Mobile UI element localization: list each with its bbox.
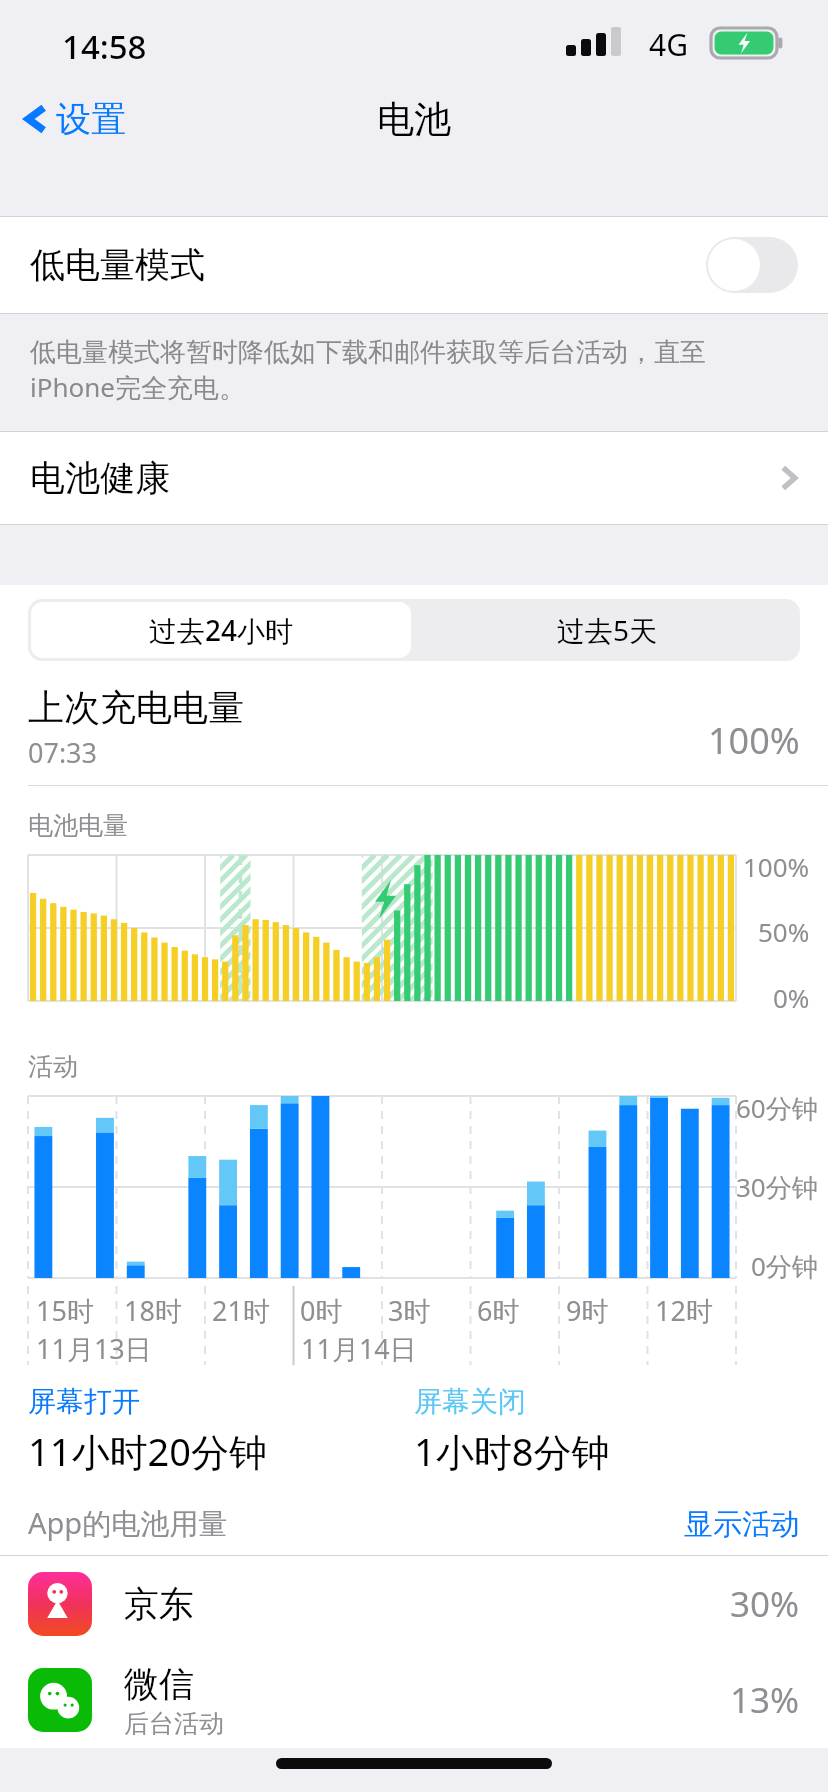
button[interactable]: 过去24小时 bbox=[31, 602, 411, 658]
staticText: 电池健康 bbox=[30, 456, 170, 500]
button[interactable]: 京东 bbox=[0, 1556, 828, 1652]
button[interactable]: Low Power Mode toggle bbox=[706, 237, 798, 293]
button[interactable]: 设置 bbox=[0, 91, 142, 147]
staticText: 4G bbox=[649, 24, 688, 65]
button[interactable]: 低电量模式 bbox=[0, 217, 828, 313]
staticText: 低电量模式 bbox=[30, 243, 205, 287]
staticText: 设置 bbox=[56, 97, 126, 141]
staticText: 上次充电电量 bbox=[28, 685, 244, 730]
staticText: 0分钟 bbox=[751, 1248, 818, 1284]
staticText: 30% bbox=[730, 1580, 800, 1628]
staticText: 后台活动 bbox=[124, 1708, 224, 1739]
staticText: 过去24小时 bbox=[149, 611, 294, 649]
staticText: 低电量模式将暂时降低如下载和邮件获取等后台活动，直至 bbox=[30, 336, 706, 369]
staticText: 21时 bbox=[212, 1292, 270, 1329]
button[interactable]: 微信 bbox=[0, 1652, 828, 1748]
staticText: 1小时8分钟 bbox=[414, 1425, 610, 1477]
staticText: 18时 bbox=[124, 1292, 182, 1329]
staticText: iPhone完全充电。 bbox=[30, 369, 245, 405]
button[interactable]: 显示活动 bbox=[684, 1506, 800, 1543]
button[interactable]: 过去5天 bbox=[414, 599, 800, 661]
staticText: 3时 bbox=[388, 1292, 431, 1329]
staticText: 07:33 bbox=[28, 734, 98, 771]
staticText: 9时 bbox=[566, 1292, 609, 1329]
staticText: 屏幕关闭 bbox=[414, 1384, 526, 1419]
staticText: 电池电量 bbox=[28, 810, 128, 841]
staticText: 11月14日 bbox=[301, 1330, 417, 1367]
staticText: 微信 bbox=[124, 1662, 194, 1706]
staticText: 过去5天 bbox=[557, 611, 658, 649]
staticText: 0% bbox=[773, 980, 810, 1015]
staticText: 屏幕打开 bbox=[28, 1384, 140, 1419]
staticText: 13% bbox=[730, 1676, 800, 1724]
staticText: 6时 bbox=[477, 1292, 520, 1329]
staticText: 30分钟 bbox=[736, 1169, 818, 1205]
staticText: 0时 bbox=[300, 1292, 343, 1329]
staticText: 电池 bbox=[377, 96, 451, 143]
staticText: 活动 bbox=[28, 1051, 78, 1082]
staticText: 15时 bbox=[36, 1292, 94, 1329]
staticText: 显示活动 bbox=[684, 1506, 800, 1543]
staticText: 100% bbox=[743, 849, 810, 884]
staticText: 60分钟 bbox=[736, 1090, 818, 1126]
staticText: 50% bbox=[758, 914, 810, 949]
button[interactable]: 电池健康 bbox=[0, 432, 828, 524]
staticText: App的电池用量 bbox=[28, 1503, 228, 1543]
staticText: 100% bbox=[708, 716, 800, 765]
staticText: 14:58 bbox=[62, 24, 147, 69]
staticText: 京东 bbox=[124, 1582, 194, 1626]
staticText: 12时 bbox=[655, 1292, 713, 1329]
staticText: 11小时20分钟 bbox=[28, 1425, 267, 1477]
staticText: 11月13日 bbox=[36, 1330, 152, 1367]
